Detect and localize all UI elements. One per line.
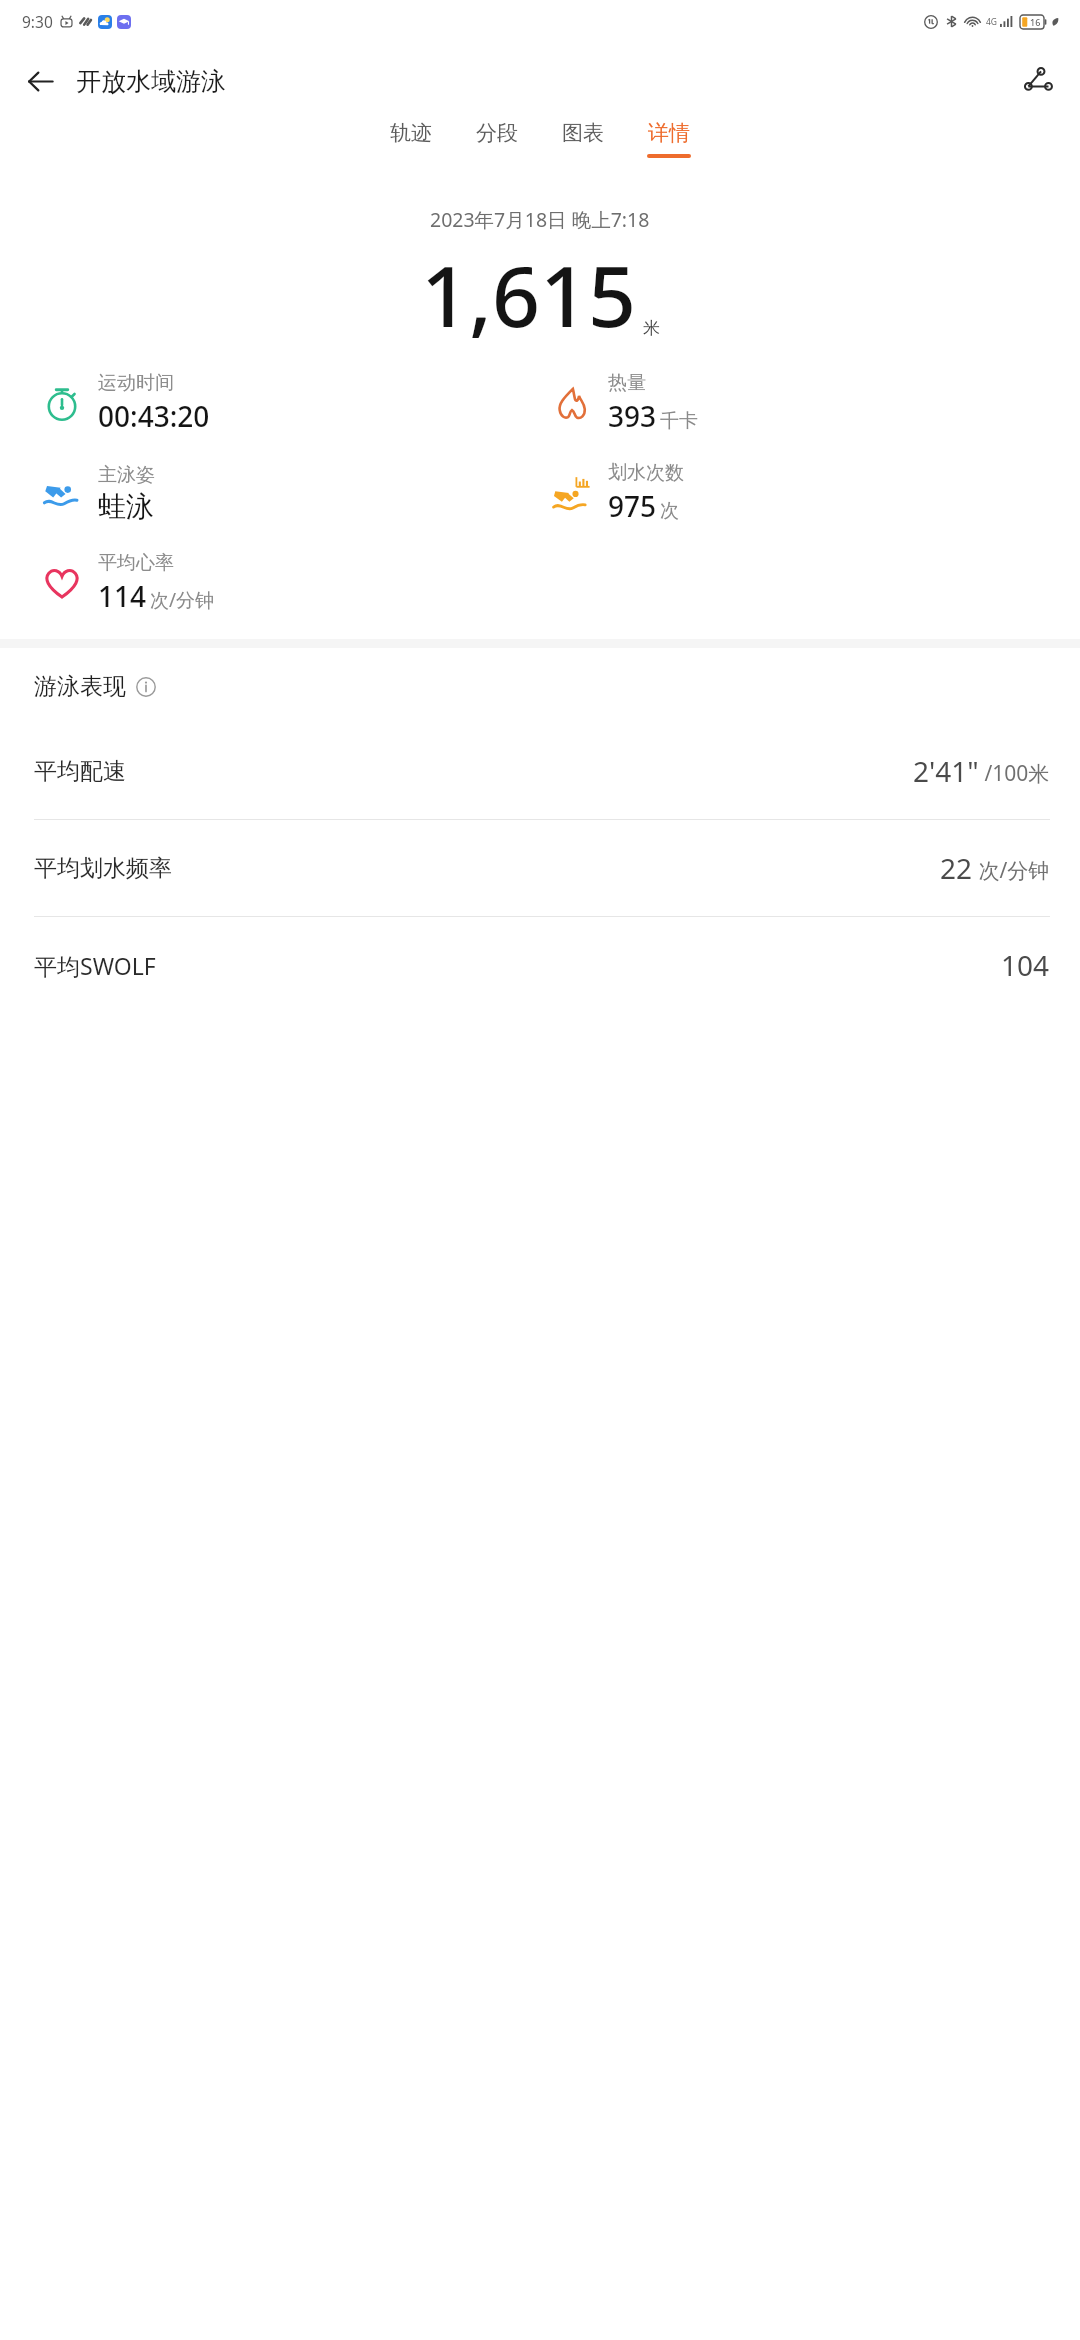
button[interactable]: 平均配速 <box>0 723 1080 819</box>
button[interactable]: 图表 <box>540 120 626 182</box>
staticText: 详情 <box>648 120 690 146</box>
button[interactable]: 运动时间 <box>40 371 550 435</box>
staticText: 22 <box>940 849 973 887</box>
staticText: 开放水域游泳 <box>76 66 226 97</box>
staticText: 米 <box>643 318 660 339</box>
staticText: 次 <box>660 499 679 523</box>
staticText: 运动时间 <box>98 371 174 395</box>
button[interactable]: 热量 <box>550 371 1060 435</box>
staticText: 00:43:20 <box>98 397 210 435</box>
staticText: 9:30 <box>22 11 53 32</box>
staticText: 104 <box>1001 946 1050 984</box>
staticText: 次/分钟 <box>150 587 215 613</box>
button[interactable]: 分享 <box>1012 55 1064 107</box>
button[interactable]: 轨迹 <box>368 120 454 182</box>
staticText: 轨迹 <box>390 120 432 146</box>
staticText: 次/分钟 <box>973 856 1050 885</box>
staticText: 主泳姿 <box>98 463 155 487</box>
button[interactable]: 详情 <box>626 120 712 182</box>
button[interactable]: 平均SWOLF <box>0 917 1080 1013</box>
button[interactable]: 划水次数 <box>550 461 1060 525</box>
staticText: 393 <box>608 397 657 435</box>
button[interactable]: 返回 <box>14 55 66 107</box>
staticText: 2'41" <box>913 752 979 790</box>
staticText: 划水次数 <box>608 461 684 485</box>
other: 说明 <box>136 677 156 697</box>
button[interactable]: 游泳表现 <box>34 672 1080 701</box>
staticText: 游泳表现 <box>34 672 126 701</box>
staticText: 114 <box>98 577 147 615</box>
button[interactable]: 主泳姿 <box>40 463 550 524</box>
staticText: 16 <box>1030 16 1041 28</box>
staticText: 千卡 <box>660 409 698 433</box>
staticText: 平均划水频率 <box>34 854 172 883</box>
staticText: 平均配速 <box>34 757 126 786</box>
button[interactable]: 平均心率 <box>40 551 550 615</box>
staticText: 图表 <box>562 120 604 146</box>
staticText: 1,615 <box>421 237 637 351</box>
staticText: 2023年7月18日 晚上7:18 <box>430 206 650 233</box>
staticText: /100米 <box>979 759 1050 788</box>
staticText: 热量 <box>608 371 646 395</box>
button[interactable]: 平均划水频率 <box>0 820 1080 916</box>
staticText: 975 <box>608 487 657 525</box>
staticText: 4G <box>986 16 998 28</box>
staticText: 平均心率 <box>98 551 174 575</box>
button[interactable]: 分段 <box>454 120 540 182</box>
staticText: 蛙泳 <box>98 489 154 524</box>
staticText: 平均SWOLF <box>34 950 156 981</box>
staticText: 分段 <box>476 120 518 146</box>
